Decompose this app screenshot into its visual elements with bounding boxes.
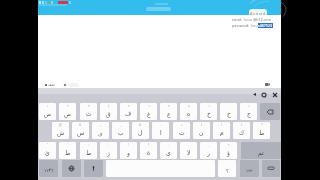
button[interactable]: ٧ [160, 103, 177, 120]
staticText: ٣ [88, 104, 90, 108]
button[interactable]: / [233, 122, 250, 139]
staticText: ٥ [128, 104, 130, 108]
button[interactable]: * [253, 122, 270, 139]
button[interactable]: Hide keyboard [262, 160, 280, 177]
staticText: hou [251, 23, 258, 28]
button[interactable]: ٣ [80, 103, 97, 120]
button[interactable]: ٠ [220, 103, 237, 120]
staticText: م [220, 129, 224, 136]
button[interactable]: @ [52, 122, 69, 139]
button[interactable]: Change language [62, 160, 81, 177]
staticText: ه [187, 110, 191, 117]
staticText: ز [107, 149, 110, 156]
staticText: ١ [47, 104, 49, 108]
button[interactable]: ٪ [240, 103, 257, 120]
button[interactable]: : [80, 142, 97, 159]
staticText: # [79, 123, 82, 127]
staticText: غ [147, 110, 151, 117]
staticText: s [259, 11, 261, 15]
staticText: t [261, 11, 263, 15]
button[interactable]: Close keyboard [272, 92, 277, 97]
staticText: . [188, 143, 189, 147]
staticText: ر [207, 149, 210, 156]
button[interactable]: ! [120, 142, 137, 159]
button[interactable]: ؟ [218, 160, 236, 177]
button[interactable]: ' [59, 142, 76, 159]
staticText: ٩ [208, 104, 210, 108]
button[interactable]: طبعة [45, 83, 57, 86]
staticText: ط [86, 149, 92, 156]
button[interactable]: Tab [58, 1, 68, 4]
button[interactable]: " [39, 142, 56, 159]
staticText: ب [118, 129, 124, 136]
button[interactable]: Symbols [39, 160, 58, 177]
staticText: ع [167, 110, 171, 117]
staticText: ! [128, 143, 129, 147]
button[interactable]: Clipboard [252, 92, 257, 97]
staticText: ن [199, 129, 204, 136]
button[interactable]: & [132, 122, 149, 139]
button[interactable]: ? [140, 142, 157, 159]
staticText: A [250, 11, 253, 15]
staticText: طبعة [48, 83, 55, 86]
staticText: ٠ [228, 104, 230, 108]
staticText: password: [232, 23, 250, 28]
button[interactable]: _ [112, 122, 129, 139]
button[interactable]: ٫ [92, 122, 109, 139]
button[interactable]: Numbers [240, 160, 259, 177]
staticText: خ [207, 110, 211, 117]
staticText: ئ [45, 149, 50, 156]
staticText: + [181, 123, 183, 127]
button[interactable]: ٤ [100, 103, 117, 120]
staticText: hous [244, 17, 253, 22]
staticText: ا [160, 129, 162, 136]
staticText: @h12.com [253, 17, 271, 22]
button[interactable]: ٦ [140, 103, 157, 120]
staticText: ، [168, 143, 170, 147]
button[interactable]: ٩ [200, 103, 217, 120]
staticText: ؟ [226, 168, 229, 174]
staticText: ( [201, 123, 202, 127]
staticText: ؟ [228, 143, 230, 147]
staticText: ث [86, 110, 92, 117]
button[interactable]: Done [241, 142, 281, 159]
staticText: ؟١٢٣ [44, 168, 54, 173]
staticText: ي [98, 129, 103, 136]
button[interactable]: # [72, 122, 89, 139]
button[interactable]: Voice input [84, 160, 103, 177]
button[interactable]: + [173, 122, 190, 139]
staticText: ت [179, 129, 185, 136]
staticText: ح [227, 110, 231, 117]
staticText: ٢ [67, 104, 69, 108]
button[interactable]: - [152, 122, 169, 139]
staticText: ٨ [188, 104, 190, 108]
button[interactable]: , [200, 142, 217, 159]
button[interactable]: ، [160, 142, 177, 159]
button[interactable]: ؟ [220, 142, 237, 159]
button[interactable]: Backspace [260, 103, 280, 120]
button[interactable]: ) [213, 122, 230, 139]
staticText: p [253, 11, 256, 15]
button[interactable]: Address bar [146, 7, 171, 11]
button[interactable]: Add [63, 83, 67, 87]
staticText: @ [59, 123, 62, 127]
button[interactable]: Camera [265, 83, 270, 86]
staticText: " [47, 143, 49, 147]
staticText: ٤ [108, 104, 110, 108]
button[interactable]: ٢ [59, 103, 76, 120]
staticText: s467523 [258, 23, 273, 28]
staticText: ش [57, 129, 65, 136]
button[interactable]: ( [193, 122, 210, 139]
button[interactable]: ; [100, 142, 117, 159]
staticText: ف [125, 110, 132, 117]
button[interactable]: ٥ [120, 103, 137, 120]
staticText: ٦ [148, 104, 150, 108]
button[interactable]: ١ [39, 103, 56, 120]
button[interactable]: Settings [261, 92, 266, 97]
button[interactable]: . [180, 142, 197, 159]
button[interactable]: ٨ [180, 103, 197, 120]
staticText: ظ [65, 149, 71, 156]
staticText: / [241, 123, 243, 127]
